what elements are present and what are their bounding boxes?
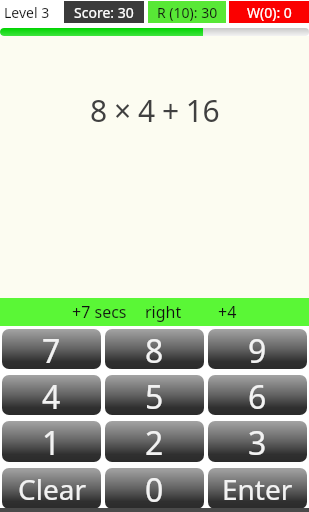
- staticText: Enter: [222, 470, 293, 508]
- staticText: Score: 30: [74, 3, 134, 22]
- staticText: 7: [42, 329, 61, 369]
- staticText: W(0): 0: [247, 3, 292, 22]
- button[interactable]: 2: [105, 421, 204, 462]
- staticText: 0: [145, 468, 164, 509]
- staticText: +7 secs: [72, 301, 127, 323]
- staticText: 9: [248, 329, 267, 369]
- staticText: 3: [248, 421, 267, 462]
- button[interactable]: 3: [208, 421, 307, 462]
- button[interactable]: Score: 30: [64, 1, 144, 23]
- button[interactable]: Enter: [208, 468, 307, 509]
- staticText: 8 × 4 + 16: [90, 90, 220, 131]
- staticText: +4: [218, 301, 237, 323]
- staticText: Clear: [18, 470, 86, 508]
- button[interactable]: W(0): 0: [229, 1, 309, 23]
- button[interactable]: 4: [2, 375, 101, 415]
- staticText: right: [145, 301, 182, 323]
- staticText: 5: [145, 375, 164, 415]
- staticText: 2: [145, 421, 164, 462]
- staticText: 8: [145, 329, 164, 369]
- button[interactable]: 7: [2, 329, 101, 369]
- button[interactable]: 0: [105, 468, 204, 509]
- button[interactable]: Clear: [2, 468, 101, 509]
- staticText: Level 3: [4, 3, 50, 22]
- button[interactable]: 5: [105, 375, 204, 415]
- button[interactable]: R (10): 30: [148, 1, 226, 23]
- button[interactable]: 8: [105, 329, 204, 369]
- staticText: 1: [42, 421, 61, 462]
- button[interactable]: 9: [208, 329, 307, 369]
- staticText: R (10): 30: [157, 3, 218, 22]
- button[interactable]: 6: [208, 375, 307, 415]
- staticText: 4: [42, 375, 61, 415]
- button[interactable]: 1: [2, 421, 101, 462]
- staticText: 6: [248, 375, 267, 415]
